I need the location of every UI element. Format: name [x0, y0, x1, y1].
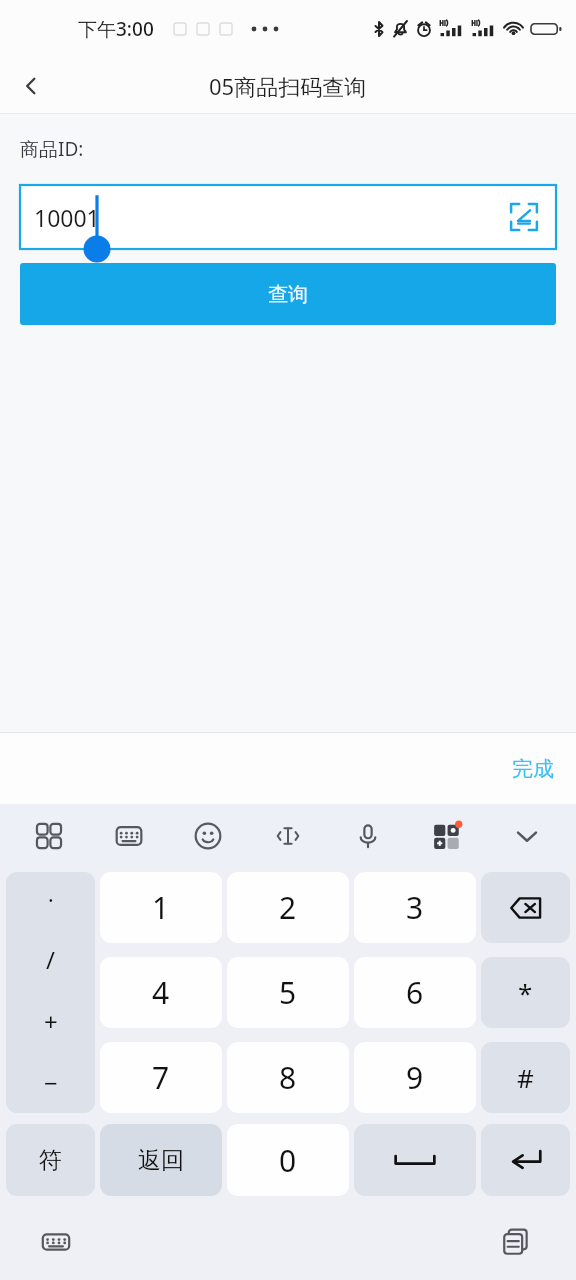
- button[interactable]: Apps: [26, 813, 72, 859]
- staticText: 符: [39, 1146, 62, 1175]
- button[interactable]: 6: [354, 957, 476, 1028]
- staticText: ·: [48, 886, 54, 915]
- button[interactable]: 8: [227, 1042, 349, 1113]
- staticText: 完成: [512, 756, 554, 782]
- staticText: 7: [152, 1057, 170, 1098]
- button[interactable]: 符: [6, 1124, 95, 1196]
- staticText: *: [518, 975, 533, 1010]
- staticText: 返回: [138, 1146, 184, 1175]
- button[interactable]: Backspace: [481, 872, 570, 943]
- button[interactable]: Switch keyboard: [34, 1220, 78, 1264]
- button[interactable]: Emoji: [185, 813, 231, 859]
- staticText: #: [517, 1060, 534, 1095]
- button[interactable]: Hide keyboard: [504, 813, 550, 859]
- staticText: /: [46, 943, 55, 976]
- staticText: 8: [279, 1057, 297, 1098]
- button[interactable]: Text editing: [265, 813, 311, 859]
- staticText: 6: [406, 972, 424, 1013]
- button[interactable]: Keyboard layout: [106, 813, 152, 859]
- staticText: 商品ID:: [20, 136, 84, 162]
- button[interactable]: 0: [227, 1124, 349, 1196]
- staticText: 4: [152, 972, 170, 1013]
- button[interactable]: 5: [227, 957, 349, 1028]
- staticText: 05商品扫码查询: [209, 71, 367, 101]
- button[interactable]: Space: [354, 1124, 476, 1196]
- staticText: 0: [279, 1140, 297, 1181]
- button[interactable]: 10001: [20, 185, 556, 249]
- button[interactable]: *: [481, 957, 570, 1028]
- staticText: −: [44, 1066, 58, 1099]
- staticText: 查询: [268, 282, 308, 307]
- button[interactable]: Scan barcode: [504, 197, 544, 237]
- staticText: 10001: [34, 202, 100, 233]
- button[interactable]: 完成: [512, 756, 554, 782]
- button[interactable]: More tools: [424, 813, 470, 859]
- staticText: 下午3:00: [78, 16, 154, 42]
- button[interactable]: 1: [100, 872, 222, 943]
- button[interactable]: 4: [100, 957, 222, 1028]
- button[interactable]: 9: [354, 1042, 476, 1113]
- button[interactable]: #: [481, 1042, 570, 1113]
- button[interactable]: 3: [354, 872, 476, 943]
- staticText: +: [44, 1005, 58, 1038]
- staticText: 9: [406, 1057, 424, 1098]
- button[interactable]: 7: [100, 1042, 222, 1113]
- button[interactable]: Clipboard: [494, 1220, 538, 1264]
- button[interactable]: ·: [6, 872, 95, 1113]
- button[interactable]: Enter: [481, 1124, 570, 1196]
- staticText: 1: [152, 887, 170, 928]
- button[interactable]: 2: [227, 872, 349, 943]
- button[interactable]: 返回: [100, 1124, 222, 1196]
- staticText: 2: [279, 887, 297, 928]
- button[interactable]: 查询: [20, 263, 556, 325]
- button[interactable]: Voice input: [345, 813, 391, 859]
- button[interactable]: Back: [0, 58, 62, 114]
- staticText: 5: [279, 972, 297, 1013]
- staticText: 3: [406, 887, 424, 928]
